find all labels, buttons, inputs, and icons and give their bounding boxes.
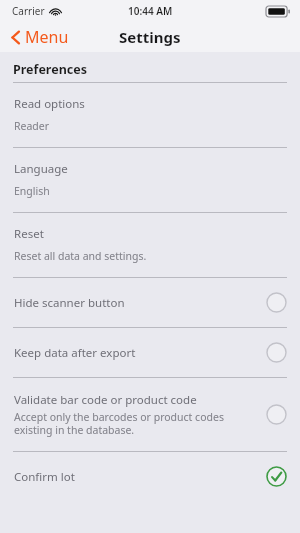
staticText: English — [14, 184, 50, 198]
staticText: Menu — [25, 26, 69, 48]
button[interactable]: Hide scanner button — [0, 278, 300, 327]
staticText: Accept only the barcodes or product code… — [14, 410, 224, 437]
button[interactable]: Reset — [0, 213, 300, 277]
staticText: Read options — [14, 96, 85, 112]
button[interactable]: Unchecked — [266, 292, 287, 313]
staticText: Keep data after export — [14, 345, 136, 361]
staticText: Language — [14, 161, 68, 177]
button[interactable]: Language — [0, 148, 300, 212]
staticText: Preferences — [13, 61, 87, 78]
staticText: Carrier — [12, 4, 45, 18]
button[interactable]: Validate bar code or product code — [0, 378, 300, 451]
staticText: Reader — [14, 119, 50, 133]
button[interactable]: Confirm lot — [0, 452, 300, 501]
staticText: Reset — [14, 226, 44, 242]
staticText: 10:44 AM — [128, 4, 173, 18]
staticText: Reset all data and settings. — [14, 249, 147, 263]
button[interactable]: Unchecked — [266, 404, 287, 425]
button[interactable]: Keep data after export — [0, 328, 300, 377]
button[interactable]: Unchecked — [266, 342, 287, 363]
button[interactable]: Read options — [0, 83, 300, 147]
button[interactable]: Menu — [0, 23, 79, 51]
staticText: Confirm lot — [14, 469, 75, 485]
button[interactable]: Checked — [266, 466, 287, 487]
staticText: Settings — [119, 27, 181, 47]
staticText: Validate bar code or product code — [14, 392, 197, 408]
staticText: Hide scanner button — [14, 295, 125, 311]
